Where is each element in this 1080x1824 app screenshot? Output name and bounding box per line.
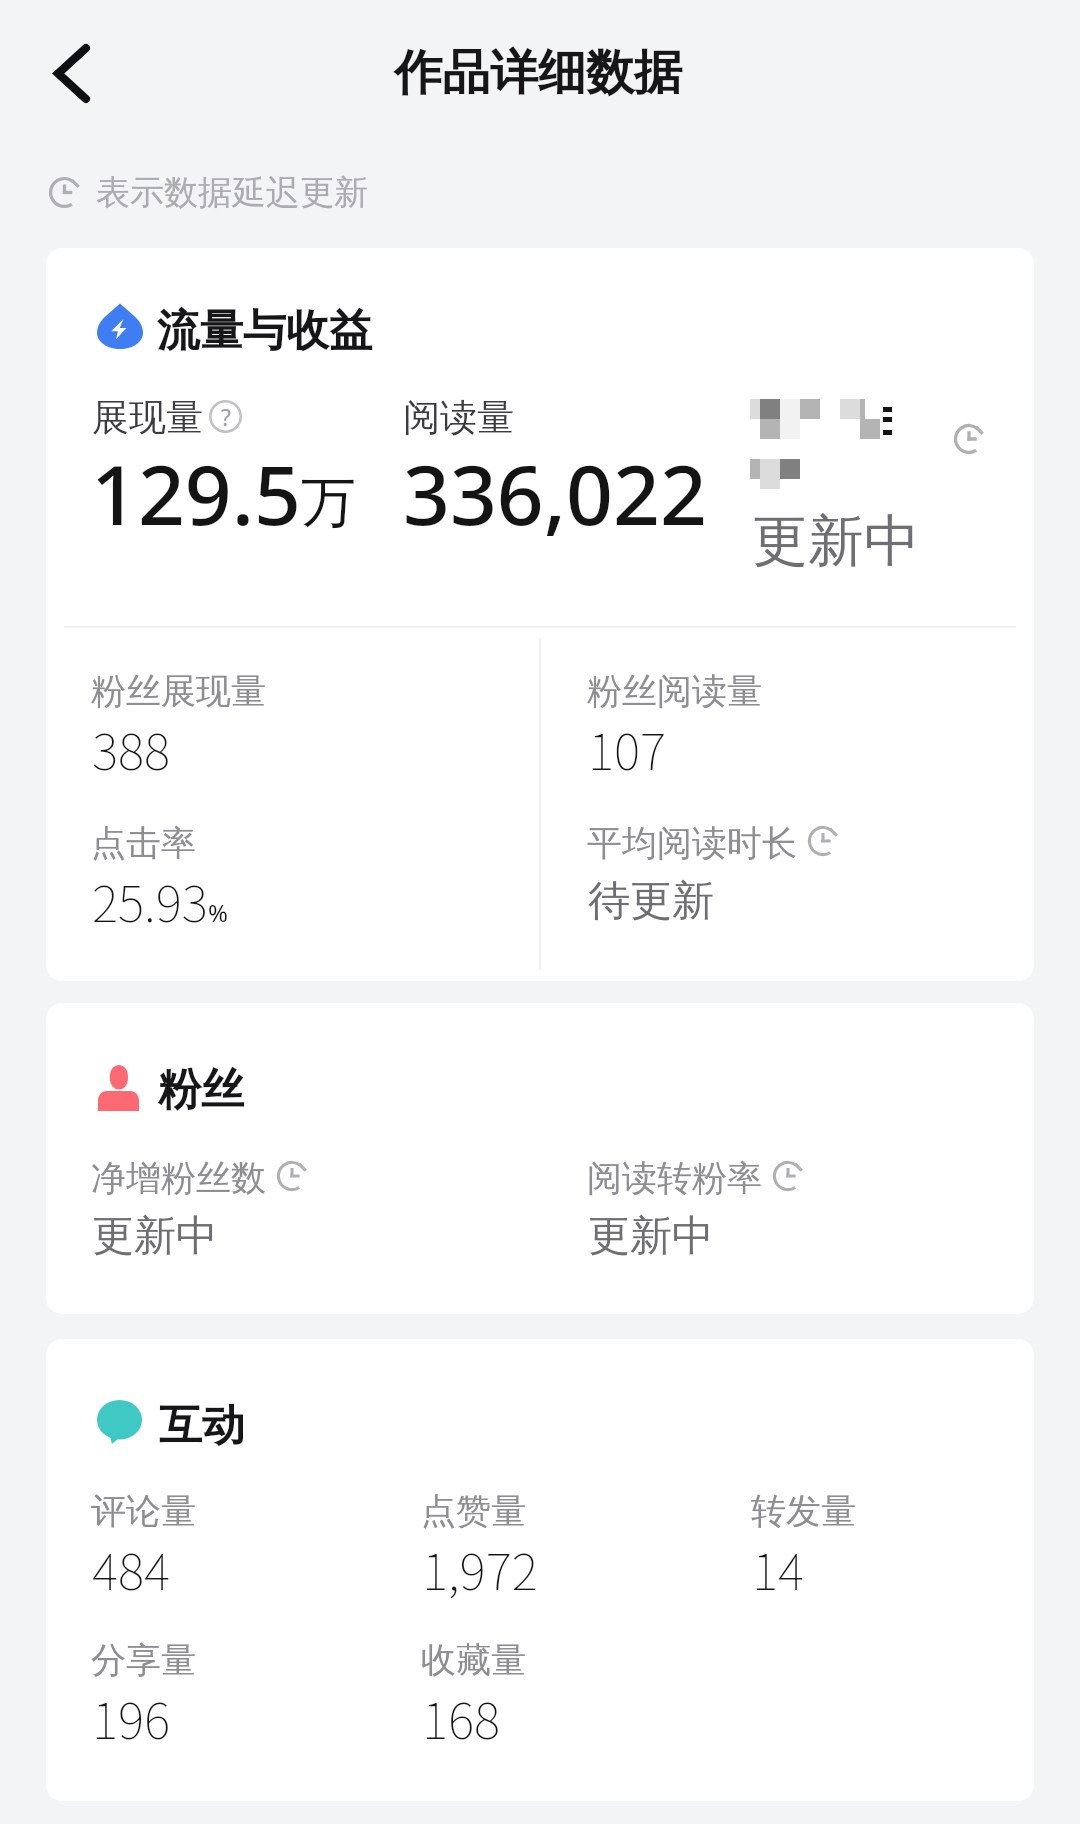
staticText: 粉丝 [158,1063,244,1117]
staticText: 收藏量 [421,1638,526,1682]
staticText: 粉丝阅读量 [587,669,762,713]
staticText: 更新中 [92,1210,218,1263]
button[interactable]: 互动 [46,1339,1034,1801]
staticText: 净增粉丝数 [91,1156,266,1200]
staticText: ? [221,401,231,432]
staticText: 粉丝展现量 [91,669,266,713]
button[interactable]: 流量与收益 [46,248,1034,981]
staticText: 更新中 [588,1210,714,1263]
staticText: 评论量 [91,1489,196,1533]
staticText: 388 [92,712,171,784]
staticText: 阅读转粉率 [587,1156,762,1200]
button[interactable]: 粉丝 [46,1003,1034,1314]
staticText: 平均阅读时长 [587,821,797,865]
staticText: 阅读量 [403,394,514,441]
staticText: 点击率 [91,821,196,865]
staticText: 25.93 [92,864,208,936]
staticText: 196 [92,1681,171,1753]
staticText: 168 [422,1681,501,1753]
staticText: 待更新 [588,875,714,928]
staticText: % [208,896,228,929]
staticText: 互动 [159,1399,245,1453]
staticText: 分享量 [91,1638,196,1682]
button[interactable]: Back [22,25,118,121]
staticText: 点赞量 [421,1489,526,1533]
staticText: 336,022 [403,437,707,549]
staticText: 129.5 [91,437,301,549]
staticText: 展现量 [92,394,203,441]
staticText: 流量与收益 [157,304,372,358]
staticText: 1,972 [422,1532,538,1604]
staticText: 表示数据延迟更新 [96,171,368,214]
staticText: 万 [301,468,356,537]
staticText: 更新中 [752,506,920,577]
staticText: 14 [752,1532,805,1604]
staticText: 转发量 [751,1489,856,1533]
staticText: 107 [588,712,667,784]
staticText: 作品详细数据 [394,43,682,103]
staticText: 484 [92,1532,171,1604]
